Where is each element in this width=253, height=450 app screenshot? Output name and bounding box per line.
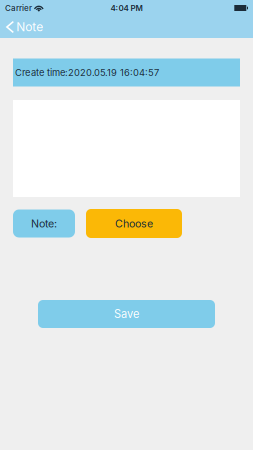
staticText: Choose: [115, 217, 153, 230]
staticText: Note: [16, 20, 43, 34]
staticText: Carrier: [5, 3, 32, 13]
staticText: Note:: [31, 217, 57, 230]
staticText: Create time:2020.05.19 16:04:57: [15, 67, 159, 78]
button[interactable]: Choose: [86, 209, 182, 238]
button[interactable]: Save: [38, 300, 215, 328]
staticText: 4:04 PM: [110, 3, 142, 13]
staticText: Save: [114, 307, 139, 321]
button[interactable]: Note: [0, 16, 51, 38]
button[interactable]: Note:: [13, 209, 75, 237]
